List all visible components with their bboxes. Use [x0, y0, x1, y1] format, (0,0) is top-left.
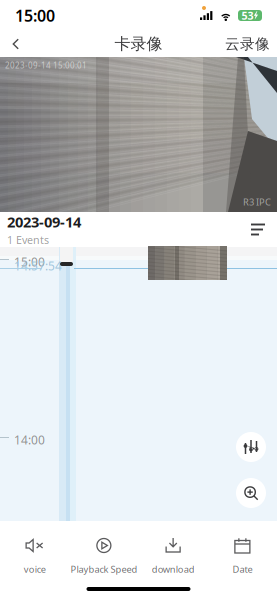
- staticText: 15:00: [15, 5, 55, 26]
- staticText: 15:00: [14, 254, 45, 270]
- staticText: Playback Speed: [70, 563, 137, 575]
- staticText: 14:57:54: [14, 258, 62, 274]
- staticText: download: [152, 563, 195, 575]
- staticText: R3 IPC: [243, 196, 271, 208]
- staticText: 云录像: [225, 35, 270, 53]
- staticText: 53: [241, 8, 253, 23]
- button[interactable]: Date: [208, 521, 277, 579]
- staticText: 2023-09-14 15:00:01: [5, 60, 87, 71]
- staticText: 2023-09-14: [7, 212, 81, 232]
- staticText: 14:00: [14, 432, 45, 448]
- staticText: voice: [24, 563, 46, 575]
- button[interactable]: voice: [0, 521, 69, 579]
- button[interactable]: Zoom in: [236, 478, 266, 508]
- staticText: 卡录像: [114, 34, 162, 54]
- staticText: 1 Events: [7, 233, 49, 247]
- button[interactable]: Adjust: [236, 432, 266, 462]
- button[interactable]: Back: [0, 33, 36, 55]
- staticText: Date: [232, 563, 252, 575]
- button[interactable]: download: [138, 521, 208, 579]
- button[interactable]: Events list: [239, 212, 277, 246]
- button[interactable]: 云录像: [211, 30, 277, 58]
- button[interactable]: Playback Speed: [69, 521, 138, 579]
